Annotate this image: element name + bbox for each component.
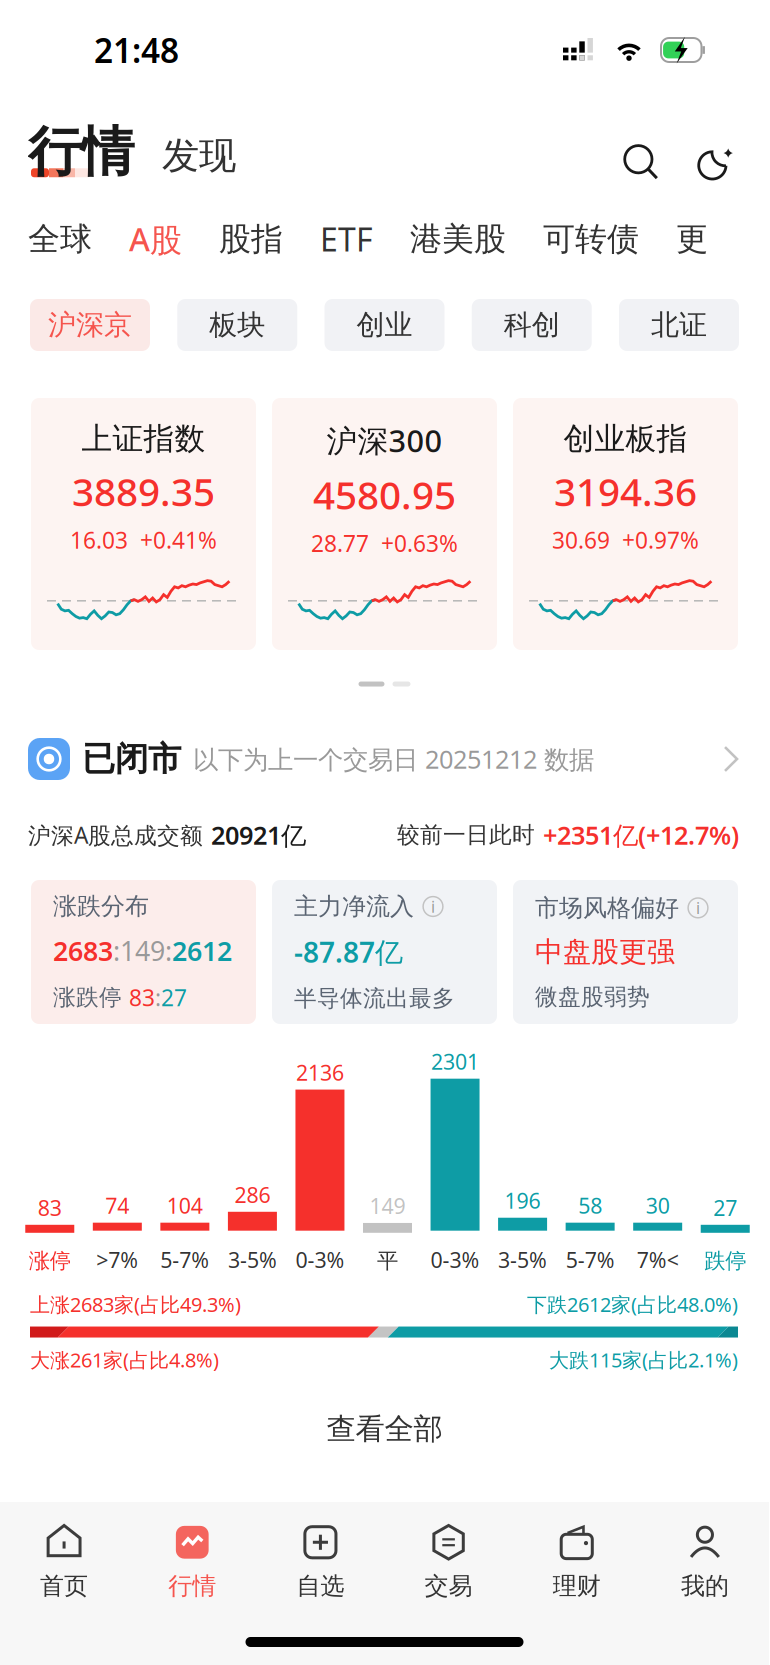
button[interactable]: 全球 [28,219,129,259]
staticText: 半导体流出最多 [294,984,455,1012]
staticText: i [696,897,700,918]
button[interactable]: 已闭市 [0,706,769,812]
staticText: 30.69 [552,525,610,555]
staticText: 全球 [28,219,92,259]
staticText: 3889.35 [72,466,215,517]
staticText: 首页 [40,1571,88,1601]
staticText: 理财 [553,1571,601,1601]
staticText: 3-5% [498,1246,547,1274]
staticText: 科创 [504,308,560,342]
button[interactable]: 创业板指 [513,398,738,650]
button[interactable]: 沪深300 [272,398,497,650]
button[interactable]: 创业 [324,299,444,351]
staticText: 平 [377,1248,398,1274]
staticText: 83 [129,982,155,1012]
button[interactable]: 首页 [0,1502,128,1620]
staticText: 5-7% [160,1246,209,1274]
staticText: 286 [234,1180,270,1209]
staticText: >7% [96,1246,138,1274]
staticText: 股指 [219,219,283,259]
button[interactable]: 理财 [513,1502,641,1620]
button[interactable]: 沪深京 [30,299,150,351]
button[interactable]: 可转债 [543,219,676,259]
button[interactable]: 交易 [384,1502,513,1620]
staticText: +0.97% [622,525,699,555]
button[interactable]: 我的 [641,1502,769,1620]
staticText: 涨跌分布 [53,891,149,921]
staticText: +2351亿(+12.7%) [543,818,739,852]
staticText: +0.63% [381,528,458,558]
staticText: 27 [161,982,187,1012]
button[interactable]: 发现 [134,133,236,185]
staticText: 自选 [296,1571,344,1601]
staticText: +0.41% [140,525,217,555]
staticText: 3-5% [228,1246,277,1274]
staticText: 上涨2683家(占比49.3%) [30,1291,241,1317]
button[interactable]: 自选 [256,1502,384,1620]
staticText: 交易 [425,1571,473,1601]
staticText: 微盘股弱势 [535,983,650,1011]
staticText: 58 [578,1191,602,1220]
staticText: 发现 [162,133,236,179]
button[interactable]: 股指 [219,219,320,259]
button[interactable]: 上证指数 [31,398,256,650]
staticText: 上证指数 [81,420,205,458]
staticText: 可转债 [543,219,639,259]
staticText: :149: [113,933,172,968]
staticText: 30 [646,1191,670,1220]
staticText: 更 [676,219,708,259]
staticText: 149 [369,1192,405,1220]
staticText: 中盘股更强 [535,935,675,969]
staticText: 2683 [53,933,113,968]
staticText: 3194.36 [554,466,697,517]
staticText: 27 [713,1193,737,1222]
staticText: 2301 [431,1047,479,1076]
staticText: 沪深300 [326,420,442,461]
staticText: 查看全部 [326,1411,442,1447]
button[interactable]: 板块 [177,299,297,351]
staticText: 行情 [168,1571,216,1601]
staticText: 沪深A股总成交额 [28,820,203,850]
staticText: 较前一日此时 [397,821,535,849]
staticText: 20921亿 [211,818,306,852]
staticText: 83 [38,1193,62,1222]
staticText: 大跌115家(占比2.1%) [549,1346,738,1373]
staticText: 涨跌停 [53,983,129,1011]
staticText: 7%< [637,1246,679,1274]
staticText: 涨停 [29,1248,71,1274]
staticText: 0-3% [295,1246,344,1274]
staticText: 创业 [356,308,412,342]
button[interactable]: Search [619,141,663,185]
staticText: 北证 [651,308,707,342]
staticText: ETF [320,218,373,260]
staticText: 16.03 [70,525,128,555]
staticText: 沪深京 [48,308,132,342]
staticText: 跌停 [704,1248,746,1274]
staticText: 我的 [681,1571,729,1601]
staticText: 已闭市 [82,738,181,779]
staticText: 2136 [296,1058,344,1086]
staticText: 4580.95 [313,469,456,520]
staticText: 创业板指 [563,420,687,458]
staticText: 以下为上一个交易日 20251212 数据 [193,742,594,776]
button[interactable]: A股 [129,218,219,260]
staticText: 74 [105,1191,129,1220]
staticText: 板块 [209,308,265,342]
staticText: 2612 [172,933,232,968]
staticText: 行情 [28,119,134,185]
staticText: A股 [129,218,182,260]
button[interactable]: ETF [320,218,410,260]
staticText: 5-7% [566,1246,615,1274]
staticText: 大涨261家(占比4.8%) [30,1346,219,1373]
staticText: 28.77 [311,528,369,558]
staticText: 市场风格偏好 [535,893,679,923]
staticText: 下跌2612家(占比48.0%) [527,1291,738,1317]
staticText: 21:48 [94,28,179,72]
button[interactable]: 北证 [619,299,739,351]
button[interactable]: 港美股 [410,219,543,259]
button[interactable]: 科创 [472,299,592,351]
button[interactable]: 查看全部 [0,1390,769,1468]
staticText: 主力净流入 [294,892,414,921]
button[interactable]: Night mode [663,141,737,185]
button[interactable]: 行情 [128,1502,256,1620]
